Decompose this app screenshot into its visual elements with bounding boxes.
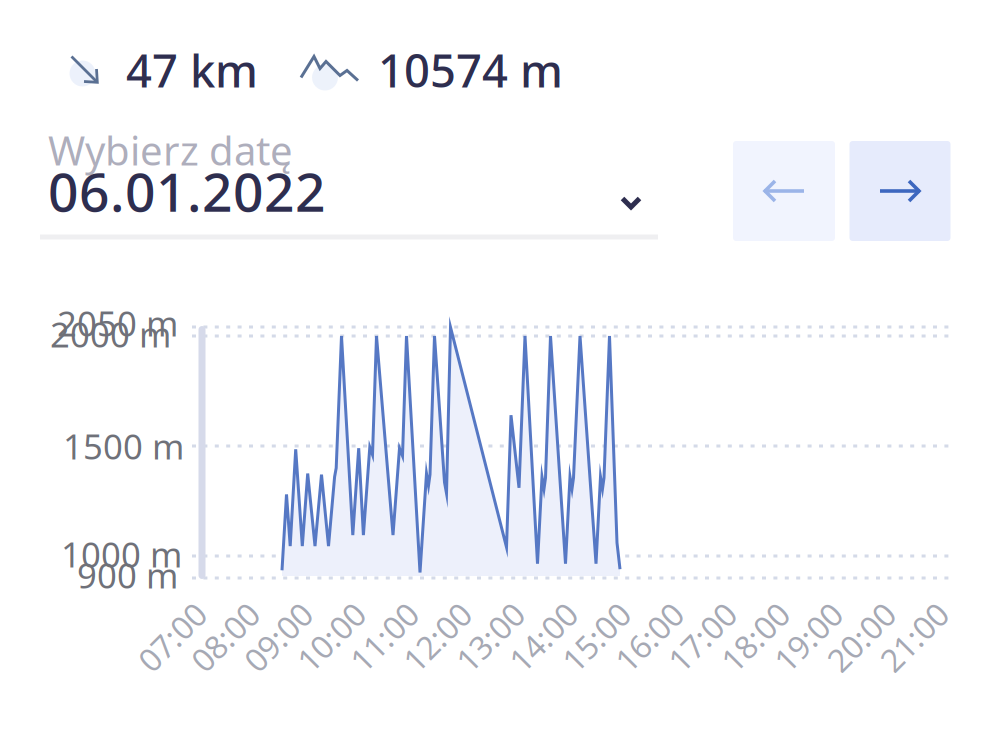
staticText: 09:00 <box>237 616 318 658</box>
staticText: 900 m <box>77 552 178 598</box>
button[interactable]: Previous day <box>733 141 835 241</box>
staticText: 16:00 <box>608 616 689 658</box>
staticText: 13:00 <box>449 616 530 658</box>
staticText: Wybierz datę <box>48 123 293 176</box>
staticText: 1500 m <box>63 423 184 469</box>
staticText: 2050 m <box>57 300 178 346</box>
button[interactable]: Next day <box>849 141 950 241</box>
staticText: 08:00 <box>184 616 265 658</box>
staticText: 17:00 <box>661 616 742 658</box>
staticText: 18:00 <box>714 616 795 658</box>
staticText: 10:00 <box>290 616 371 658</box>
staticText: 14:00 <box>502 616 583 658</box>
staticText: 07:00 <box>131 616 212 658</box>
button[interactable]: Wybierz datę <box>0 0 1000 753</box>
staticText: 1000 m <box>61 531 182 577</box>
staticText: 11:00 <box>343 616 424 658</box>
staticText: 06.01.2022 <box>48 156 326 226</box>
staticText: 20:00 <box>820 616 901 658</box>
staticText: 2000 m <box>50 311 171 357</box>
staticText: 21:00 <box>873 616 954 658</box>
staticText: 47 km <box>126 40 258 100</box>
staticText: 15:00 <box>555 616 636 658</box>
staticText: 10574 m <box>378 40 563 100</box>
staticText: 19:00 <box>767 616 848 658</box>
staticText: 12:00 <box>396 616 477 658</box>
